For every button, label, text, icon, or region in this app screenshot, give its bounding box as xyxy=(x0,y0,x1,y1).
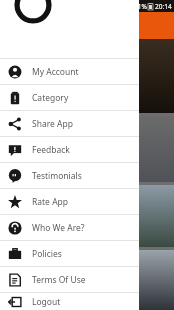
staticText: 20:14 xyxy=(155,2,172,11)
staticText: Terms Of Use xyxy=(32,274,86,286)
staticText: Who We Are? xyxy=(32,222,85,234)
staticText: Rate App xyxy=(32,196,69,208)
staticText: tion xyxy=(2,295,19,306)
button[interactable]: Rate App xyxy=(0,189,139,214)
staticText: Testimonials xyxy=(32,170,82,182)
staticText: 81% xyxy=(134,2,147,11)
staticText: Category xyxy=(32,92,69,104)
button[interactable]: Who We Are? xyxy=(0,215,139,240)
button[interactable]: Testimonials xyxy=(0,163,139,188)
button[interactable]: Share App xyxy=(0,111,139,136)
button[interactable]: Category xyxy=(0,85,139,110)
staticText: Policies xyxy=(32,248,62,260)
staticText: ng s xyxy=(2,221,13,243)
staticText: Logout xyxy=(32,296,61,308)
button[interactable]: Feedback xyxy=(0,137,139,162)
staticText: Feedback xyxy=(32,144,70,156)
button[interactable]: Terms Of Use xyxy=(0,267,139,292)
button[interactable]: Back xyxy=(6,16,26,36)
button[interactable]: Policies xyxy=(0,241,139,266)
staticText: My Account xyxy=(32,66,79,78)
staticText: Share App xyxy=(32,118,73,130)
button[interactable]: Logout xyxy=(0,293,139,310)
button[interactable]: My Account xyxy=(0,59,139,84)
